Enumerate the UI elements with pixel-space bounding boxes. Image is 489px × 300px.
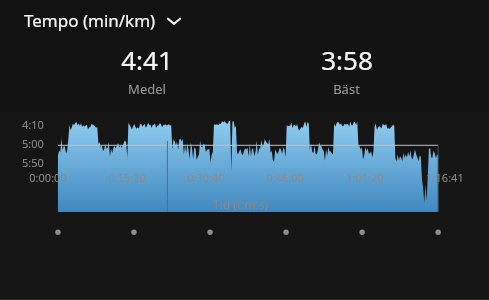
staticText: 4:10 [22, 117, 44, 132]
staticText: 1:01:20 [346, 170, 384, 185]
staticText: 5:00 [22, 136, 44, 151]
staticText: 4:41 [121, 42, 173, 77]
button[interactable]: 3:58 [244, 42, 449, 98]
button[interactable]: 4:41 [50, 42, 244, 98]
staticText: 5:50 [22, 155, 44, 170]
staticText: Bäst [333, 80, 360, 98]
staticText: 3:58 [321, 42, 373, 77]
staticText: Medel [128, 80, 166, 98]
staticText: 0:15:20 [108, 170, 146, 185]
staticText: Tempo (min/km) [24, 9, 156, 32]
staticText: 1:16:41 [426, 170, 464, 185]
staticText: 0:46:00 [266, 170, 304, 185]
staticText: 0:30:40 [187, 170, 225, 185]
staticText: Tid (t:m:s) [213, 196, 269, 212]
button[interactable]: Tempo (min/km) [24, 9, 182, 32]
staticText: 0:00:00 [29, 170, 67, 185]
other: Expand metric selector [166, 13, 182, 29]
